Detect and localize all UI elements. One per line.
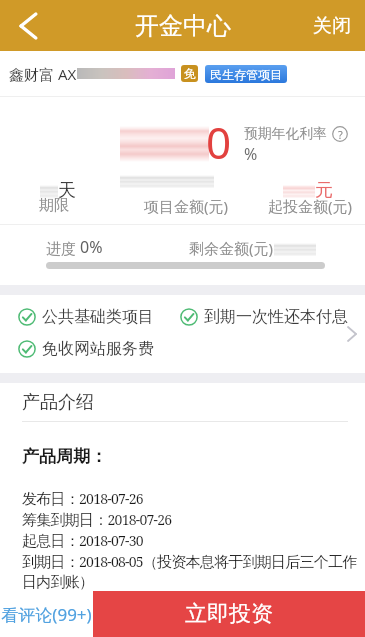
staticText: 筹集到期日：2018-07-26: [22, 510, 172, 529]
staticText: 立即投资: [185, 600, 273, 628]
button[interactable]: Help: [332, 126, 348, 142]
staticText: 元: [315, 179, 333, 202]
staticText: 期限: [39, 196, 69, 215]
button[interactable]: 关闭: [299, 0, 365, 51]
staticText: 预期年化利率: [244, 125, 327, 142]
staticText: 鑫财富 AX: [9, 64, 77, 84]
staticText: %: [244, 143, 258, 165]
staticText: 开金中心: [135, 11, 231, 41]
button[interactable]: Back: [0, 0, 56, 51]
staticText: 关闭: [313, 14, 351, 38]
staticText: 进度: [46, 238, 80, 258]
staticText: 到期日：2018-08-05（投资本息将于到期日后三个工作日内到账）: [22, 552, 363, 591]
staticText: 项目金额(元): [144, 196, 229, 216]
staticText: 民生存管项目: [210, 67, 282, 82]
staticText: 公共基础类项目: [42, 307, 154, 327]
staticText: 起息日：2018-07-30: [22, 531, 143, 550]
staticText: 看评论(99+): [0, 603, 93, 626]
staticText: 产品介绍: [22, 391, 94, 414]
staticText: 到期一次性还本付息: [204, 307, 348, 327]
staticText: 起投金额(元): [268, 196, 353, 216]
button[interactable]: 公共基础类项目: [0, 295, 365, 373]
staticText: 天: [58, 179, 76, 202]
staticText: 0%: [80, 236, 103, 258]
button[interactable]: 看评论(99+): [0, 591, 93, 637]
staticText: 0: [206, 112, 232, 172]
staticText: 免收网站服务费: [42, 339, 154, 359]
staticText: 免: [184, 66, 196, 81]
staticText: 产品周期：: [22, 446, 107, 467]
staticText: ?: [338, 127, 343, 142]
staticText: 发布日：2018-07-26: [22, 489, 143, 508]
staticText: 剩余金额(元): [189, 238, 274, 258]
button[interactable]: 立即投资: [93, 591, 365, 637]
